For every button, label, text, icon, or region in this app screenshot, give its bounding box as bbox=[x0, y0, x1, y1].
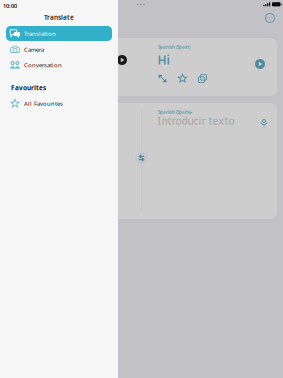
staticText: Spanish (Spain) bbox=[158, 44, 190, 50]
staticText: Translate bbox=[44, 13, 74, 21]
staticText: Translation bbox=[24, 30, 56, 37]
button[interactable]: Camera bbox=[6, 42, 112, 57]
staticText: 10:00 bbox=[3, 2, 17, 9]
staticText: Introducir texto bbox=[157, 114, 234, 127]
button[interactable]: All Favourites bbox=[6, 96, 112, 111]
staticText: Conversation bbox=[24, 61, 62, 69]
staticText: Camera bbox=[24, 46, 44, 53]
staticText: Hi bbox=[157, 52, 169, 68]
button[interactable]: Play source bbox=[117, 55, 127, 65]
staticText: Spanish (Spain) bbox=[158, 109, 190, 115]
staticText: Favourites bbox=[11, 83, 46, 92]
button[interactable]: Copy bbox=[198, 74, 207, 83]
button[interactable]: Dictate bbox=[259, 118, 269, 128]
staticText: All Favourites bbox=[24, 100, 63, 107]
button[interactable]: Conversation bbox=[6, 57, 112, 72]
button[interactable]: Translation bbox=[6, 26, 112, 41]
button[interactable]: Favourite bbox=[178, 74, 187, 83]
button[interactable]: Play translation bbox=[255, 59, 265, 69]
button[interactable]: Expand bbox=[158, 74, 167, 83]
button[interactable]: More bbox=[265, 13, 274, 22]
button[interactable]: Swap languages bbox=[135, 151, 148, 164]
